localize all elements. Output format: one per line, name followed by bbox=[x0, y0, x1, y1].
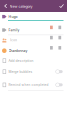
staticText: New category bbox=[10, 4, 33, 9]
button[interactable]: Back bbox=[2, 2, 10, 10]
button[interactable]: Icon option bbox=[49, 46, 53, 50]
button[interactable]: Icon option bbox=[49, 25, 53, 29]
staticText: Hugo bbox=[9, 15, 18, 19]
button[interactable]: Icon option bbox=[58, 25, 62, 29]
staticText: Icon bbox=[10, 39, 17, 42]
button[interactable]: Icon option bbox=[58, 36, 62, 40]
button[interactable]: Add description bbox=[0, 56, 63, 65]
button[interactable]: Icon option bbox=[49, 36, 53, 40]
button[interactable]: Remind when completed bbox=[0, 81, 63, 90]
staticText: Chardonnay bbox=[9, 49, 28, 53]
button[interactable]: Family bbox=[0, 25, 63, 34]
button[interactable]: Merge bubbles bbox=[0, 67, 63, 76]
button[interactable]: Save bbox=[57, 2, 65, 10]
staticText: Family bbox=[9, 28, 20, 32]
button[interactable]: Chardonnay bbox=[0, 46, 63, 55]
staticText: Merge bubbles bbox=[9, 70, 33, 74]
staticText: Remind when completed bbox=[9, 83, 49, 87]
staticText: Add description bbox=[9, 59, 34, 63]
button[interactable]: Icon option bbox=[58, 46, 62, 50]
